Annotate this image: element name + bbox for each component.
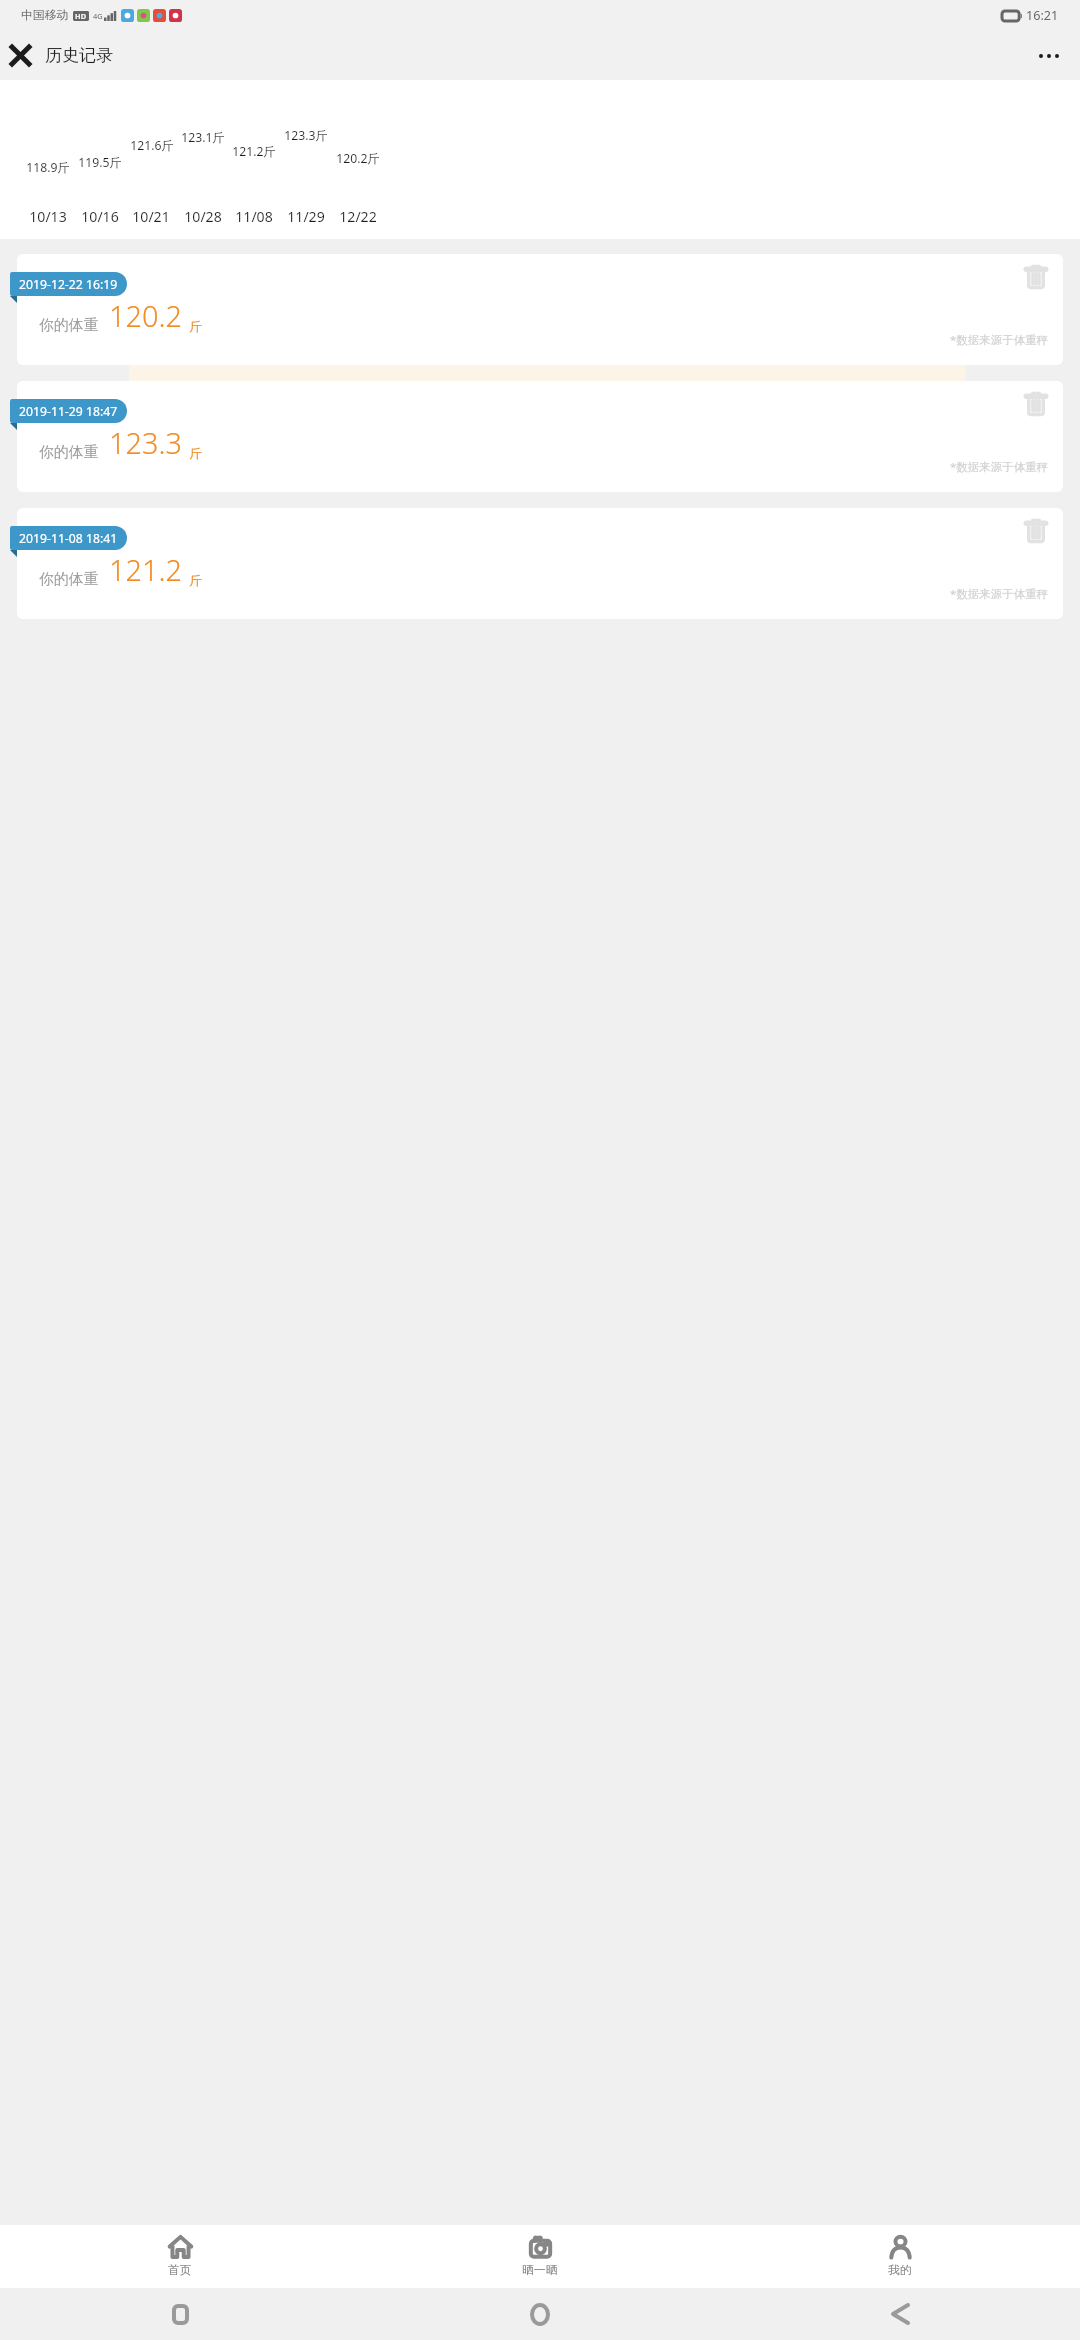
staticText: 2019-11-08 18:41 (19, 530, 118, 547)
staticText: *数据来源于体重秤 (950, 586, 1049, 602)
staticText: 我的 (888, 2263, 912, 2278)
button[interactable]: More options (1032, 39, 1065, 72)
staticText: 10/13 (29, 207, 67, 226)
staticText: 4G (93, 11, 103, 21)
staticText: 121.2 (109, 550, 182, 589)
staticText: 118.9斤 (26, 159, 70, 176)
button[interactable]: Home (525, 2299, 555, 2329)
staticText: 首页 (168, 2263, 192, 2278)
staticText: 中国移动 (21, 8, 69, 23)
staticText: 晒一晒 (522, 2263, 558, 2278)
staticText: 123.3 (109, 423, 182, 462)
button[interactable]: Delete (1022, 264, 1049, 291)
staticText: 2019-11-29 18:47 (19, 403, 118, 420)
staticText: 16:21 (1026, 7, 1059, 24)
staticText: 10/21 (132, 207, 170, 226)
staticText: 11/08 (235, 207, 273, 226)
staticText: 你的体重 (39, 443, 99, 462)
staticText: HD (75, 11, 87, 21)
staticText: 你的体重 (39, 316, 99, 335)
button[interactable]: Back (885, 2299, 915, 2329)
button[interactable]: Delete (1022, 391, 1049, 418)
button[interactable]: 首页 (0, 2225, 360, 2288)
button[interactable]: Recents (165, 2299, 195, 2329)
staticText: 斤 (189, 573, 202, 589)
button[interactable]: Close (0, 35, 41, 76)
staticText: 你的体重 (39, 570, 99, 589)
staticText: 121.6斤 (130, 137, 174, 154)
staticText: 12/22 (339, 207, 377, 226)
button[interactable]: Delete (0, 508, 1080, 619)
staticText: 斤 (189, 446, 202, 462)
staticText: *数据来源于体重秤 (950, 459, 1049, 475)
button[interactable]: Delete (0, 254, 1080, 365)
staticText: 120.2 (109, 296, 182, 335)
staticText: 10/28 (184, 207, 222, 226)
button[interactable]: Delete (1022, 518, 1049, 545)
staticText: 119.5斤 (78, 154, 122, 171)
staticText: 123.1斤 (181, 129, 225, 146)
staticText: 121.2斤 (232, 143, 276, 160)
button[interactable]: 我的 (720, 2225, 1080, 2288)
staticText: 123.3斤 (284, 127, 328, 144)
staticText: 11/29 (287, 207, 325, 226)
staticText: 120.2斤 (336, 150, 380, 167)
button[interactable]: 晒一晒 (360, 2225, 720, 2288)
staticText: 2019-12-22 16:19 (19, 276, 118, 293)
staticText: 历史记录 (45, 45, 114, 66)
staticText: 斤 (189, 319, 202, 335)
button[interactable]: Delete (0, 381, 1080, 492)
staticText: 10/16 (81, 207, 119, 226)
staticText: *数据来源于体重秤 (950, 332, 1049, 348)
